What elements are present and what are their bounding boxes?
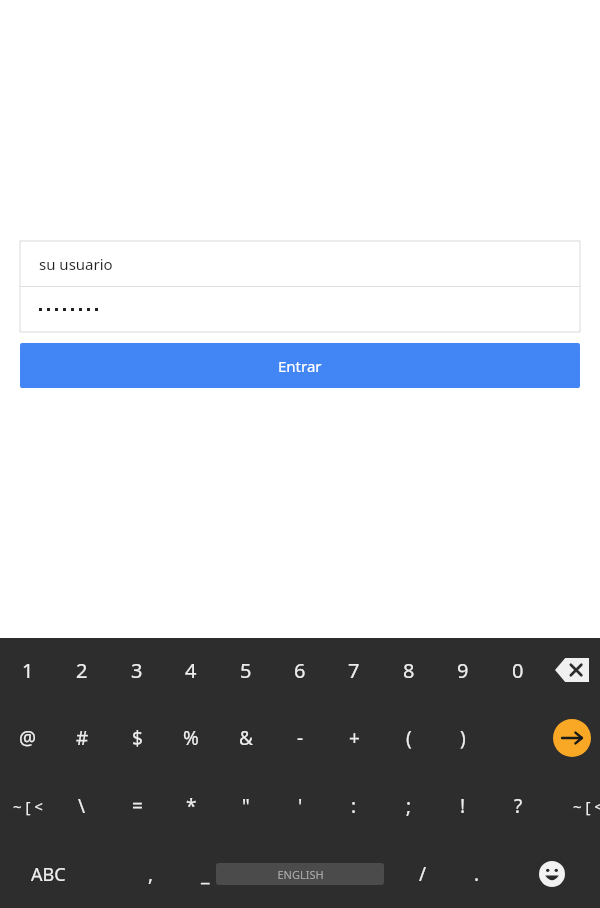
staticText: + xyxy=(349,725,360,751)
button[interactable]: ABC xyxy=(21,844,75,904)
button[interactable]: @ xyxy=(1,708,55,768)
button[interactable]: 2 xyxy=(55,640,109,700)
button[interactable]: 0 xyxy=(491,640,545,700)
button[interactable]: ENGLISH xyxy=(216,863,384,885)
staticText: " xyxy=(242,793,250,819)
staticText: ! xyxy=(460,793,466,819)
staticText: ' xyxy=(298,793,303,819)
button[interactable]: 1 xyxy=(1,640,55,700)
button[interactable]: + xyxy=(327,708,381,768)
button[interactable]: 9 xyxy=(436,640,490,700)
staticText: ENGLISH xyxy=(277,867,324,882)
button[interactable]: More symbols xyxy=(561,776,600,836)
button[interactable]: & xyxy=(219,708,273,768)
button[interactable]: Emoji xyxy=(525,844,579,904)
staticText: 9 xyxy=(457,657,469,684)
button[interactable]: \ xyxy=(55,776,109,836)
staticText: 1 xyxy=(22,657,34,684)
button[interactable]: _ xyxy=(178,844,232,904)
staticText: ; xyxy=(406,793,412,819)
button[interactable]: 3 xyxy=(110,640,164,700)
button[interactable]: Symbols xyxy=(1,776,55,836)
button[interactable]: ? xyxy=(491,776,545,836)
button[interactable]: Enter xyxy=(545,708,599,768)
staticText: 2 xyxy=(76,657,88,684)
staticText: 4 xyxy=(185,657,197,684)
button[interactable]: ; xyxy=(382,776,436,836)
staticText: # xyxy=(76,725,89,751)
staticText: ~ [ < xyxy=(573,796,600,816)
staticText: . xyxy=(474,861,480,887)
staticText: 6 xyxy=(294,657,306,684)
button[interactable]: . xyxy=(450,844,504,904)
staticText: _ xyxy=(201,861,210,887)
staticText: / xyxy=(419,861,427,887)
button[interactable]: 6 xyxy=(273,640,327,700)
button[interactable]: 8 xyxy=(382,640,436,700)
button[interactable]: su usuario xyxy=(20,241,580,286)
button[interactable]: % xyxy=(164,708,218,768)
staticText: ) xyxy=(460,725,466,751)
staticText: 5 xyxy=(240,657,252,684)
staticText: ( xyxy=(406,725,412,751)
button[interactable]: # xyxy=(55,708,109,768)
button[interactable]: Backspace xyxy=(545,640,599,700)
button[interactable]: * xyxy=(164,776,218,836)
button[interactable]: Entrar xyxy=(20,343,580,388)
button[interactable]: ! xyxy=(436,776,490,836)
button[interactable]: ) xyxy=(436,708,490,768)
staticText: $ xyxy=(132,725,143,751)
staticText: ABC xyxy=(31,862,66,887)
button[interactable]: 4 xyxy=(164,640,218,700)
staticText: - xyxy=(297,725,304,751)
staticText: 0 xyxy=(512,657,524,684)
staticText: su usuario xyxy=(39,254,113,274)
staticText: ? xyxy=(514,793,523,819)
staticText: 7 xyxy=(348,657,360,684)
staticText: = xyxy=(132,793,143,819)
staticText: , xyxy=(148,861,154,887)
button[interactable]: - xyxy=(273,708,327,768)
button[interactable]: ' xyxy=(273,776,327,836)
button[interactable]: / xyxy=(396,844,450,904)
button[interactable]: : xyxy=(327,776,381,836)
button[interactable]: 5 xyxy=(219,640,273,700)
staticText: \ xyxy=(78,793,86,819)
button[interactable]: = xyxy=(110,776,164,836)
staticText: * xyxy=(186,793,197,819)
button[interactable]: , xyxy=(124,844,178,904)
staticText: Entrar xyxy=(278,356,322,376)
staticText: ~ [ < xyxy=(13,796,43,816)
staticText: % xyxy=(183,725,199,751)
button[interactable]: ( xyxy=(382,708,436,768)
button[interactable] xyxy=(20,286,580,332)
staticText: 8 xyxy=(403,657,415,684)
button[interactable]: " xyxy=(219,776,273,836)
staticText: & xyxy=(239,725,253,751)
staticText: : xyxy=(351,793,357,819)
button[interactable]: 7 xyxy=(327,640,381,700)
staticText: @ xyxy=(19,725,37,751)
staticText: 3 xyxy=(131,657,143,684)
button[interactable]: $ xyxy=(110,708,164,768)
